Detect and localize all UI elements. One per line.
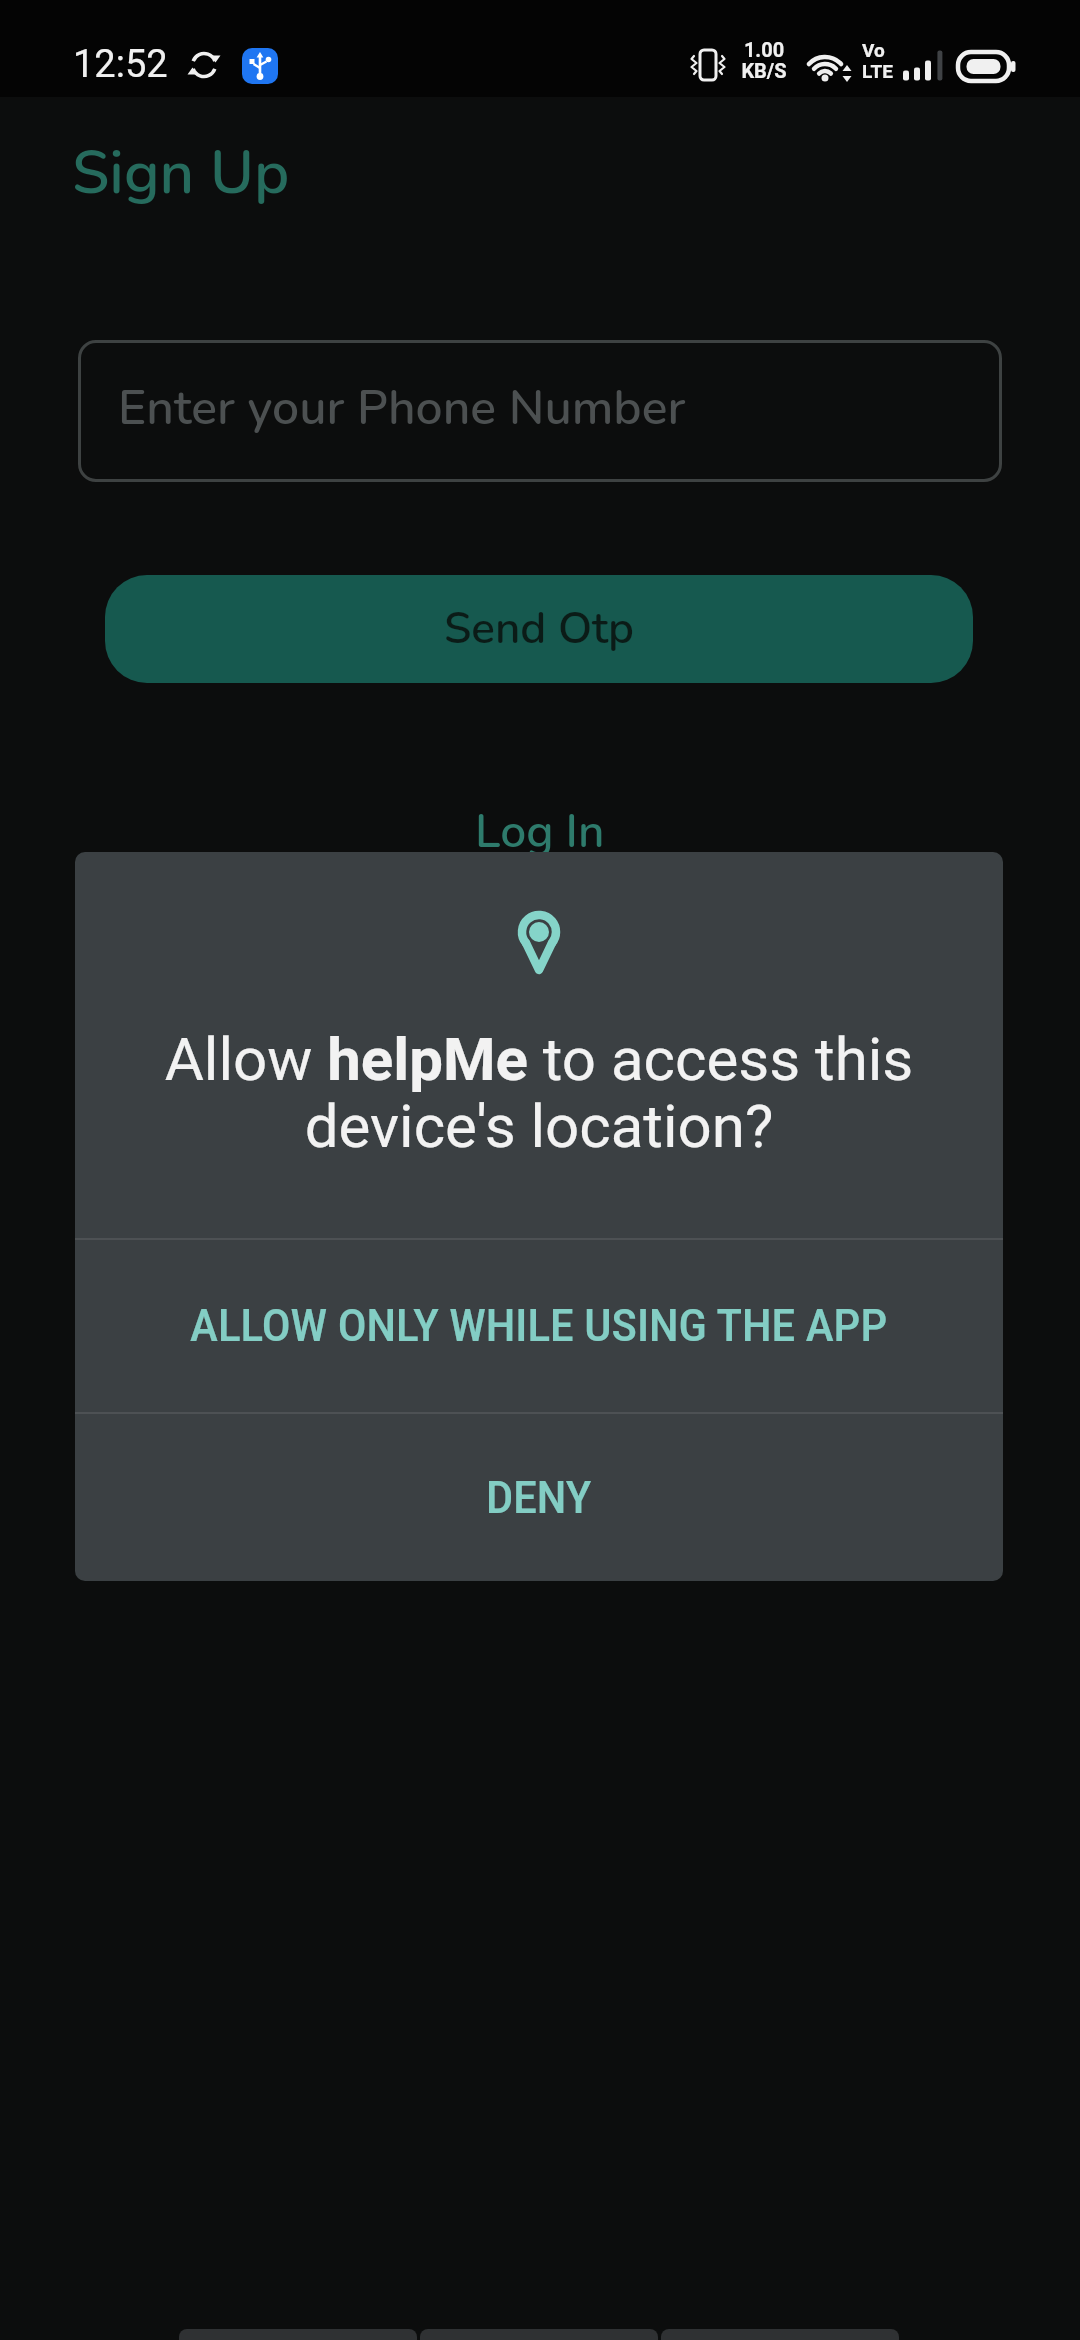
- staticText: DENY: [486, 1472, 592, 1524]
- button[interactable]: Log In: [475, 800, 605, 863]
- button[interactable]: Enter your Phone Number: [78, 340, 1002, 482]
- staticText: Allow helpMe to access this device's loc…: [75, 1024, 1003, 1162]
- staticText: 1.00 KB/S: [741, 38, 787, 83]
- button[interactable]: ALLOW ONLY WHILE USING THE APP: [75, 1240, 1003, 1412]
- button[interactable]: Send Otp: [105, 575, 973, 683]
- staticText: Enter your Phone Number: [118, 375, 686, 440]
- button[interactable]: DENY: [75, 1414, 1003, 1581]
- staticText: Send Otp: [444, 599, 635, 659]
- staticText: Sign Up: [72, 132, 290, 214]
- staticText: ALLOW ONLY WHILE USING THE APP: [190, 1300, 888, 1352]
- staticText: Vo LTE: [862, 39, 893, 82]
- staticText: 12:52: [73, 42, 168, 87]
